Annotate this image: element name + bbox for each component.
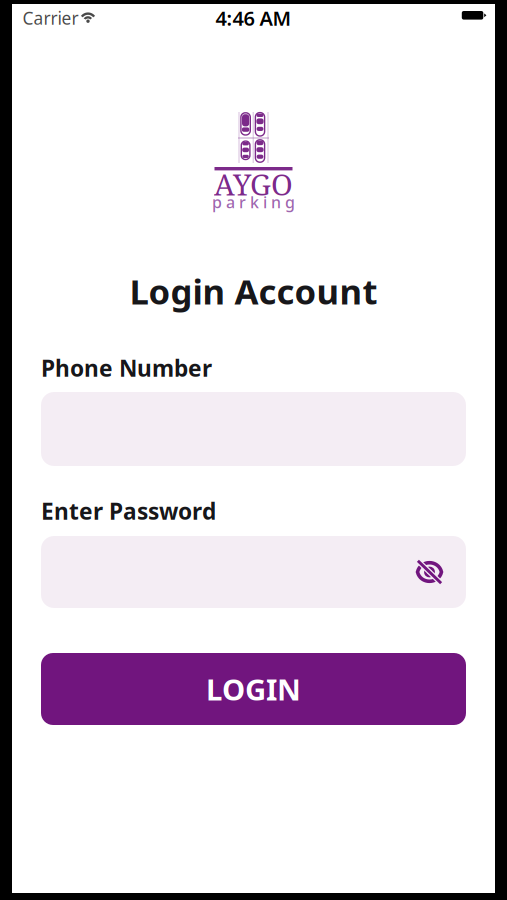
staticText: Phone Number [41, 353, 212, 383]
button[interactable]: Show password [403, 546, 455, 598]
button[interactable]: LOGIN [41, 653, 466, 725]
staticText: Enter Password [41, 496, 216, 526]
staticText: Login Account [129, 268, 377, 314]
staticText: Carrier [22, 6, 78, 29]
staticText: 4:46 AM [215, 5, 291, 31]
staticText: AYGO [214, 164, 293, 204]
staticText: p a r k i n g [212, 191, 295, 213]
staticText: LOGIN [206, 669, 301, 708]
